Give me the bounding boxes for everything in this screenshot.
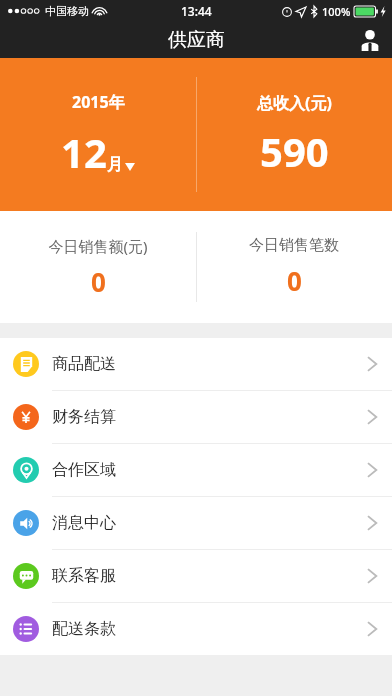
staticText: 商品配送 [52,354,116,374]
button[interactable]: 2015年 [0,58,196,211]
button[interactable]: 总收入(元) [196,58,392,211]
button[interactable]: 商品配送 [0,338,392,390]
button[interactable]: 配送条款 [0,603,392,655]
staticText: 中国移动 [45,4,89,18]
staticText: 合作区域 [52,460,116,480]
button[interactable]: 消息中心 [0,497,392,549]
staticText: 消息中心 [52,513,116,533]
staticText: 12 [61,125,107,179]
staticText: 2015年 [72,91,125,113]
staticText: 0 [287,263,302,298]
button[interactable]: 今日销售笔数 [196,211,392,323]
staticText: 月 [107,155,123,175]
button[interactable]: 合作区域 [0,444,392,496]
staticText: 今日销售额(元) [48,236,148,256]
staticText: 590 [260,124,329,178]
staticText: 供应商 [168,28,225,52]
staticText: 0 [91,264,106,299]
button[interactable]: Account [348,22,392,58]
staticText: 今日销售笔数 [249,236,339,255]
staticText: 联系客服 [52,566,116,586]
staticText: 13:44 [181,3,212,19]
button[interactable]: 财务结算 [0,391,392,443]
staticText: 100% [322,4,351,19]
button[interactable]: 今日销售额(元) [0,211,196,323]
button[interactable]: 联系客服 [0,550,392,602]
staticText: 配送条款 [52,619,116,639]
staticText: 总收入(元) [257,92,332,114]
staticText: 财务结算 [52,407,116,427]
